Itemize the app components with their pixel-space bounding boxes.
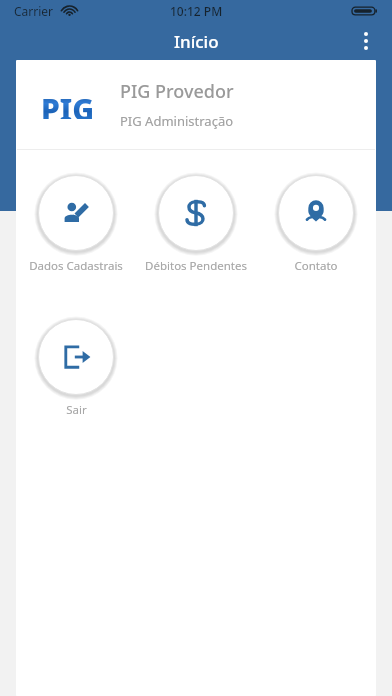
staticText: Contato xyxy=(294,258,338,274)
staticText: Início xyxy=(174,30,219,53)
staticText: PIG xyxy=(41,89,95,119)
button[interactable]: Sair xyxy=(16,316,136,420)
staticText: Sair xyxy=(66,402,87,418)
staticText: 10:12 PM xyxy=(170,3,223,19)
button[interactable]: More options xyxy=(346,22,386,60)
button[interactable]: Dados Cadastrais xyxy=(16,172,136,276)
staticText: PIG Administração xyxy=(120,112,234,130)
staticText: Débitos Pendentes xyxy=(145,258,247,274)
button[interactable]: Débitos Pendentes xyxy=(136,172,256,276)
staticText: Dados Cadastrais xyxy=(29,258,123,274)
staticText: PIG Provedor xyxy=(120,79,234,104)
button[interactable]: Contato xyxy=(256,172,376,276)
staticText: Carrier xyxy=(14,3,54,19)
